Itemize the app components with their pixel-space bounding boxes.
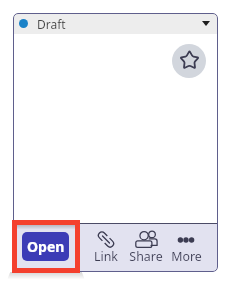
button[interactable]: Open — [22, 232, 69, 261]
staticText: Share — [129, 248, 163, 265]
button[interactable]: Share — [126, 229, 166, 267]
button[interactable]: More — [166, 229, 206, 267]
staticText: Open — [27, 237, 65, 256]
button[interactable]: Draft — [13, 13, 218, 34]
button[interactable]: Link — [86, 229, 126, 267]
button[interactable]: Expand draft menu — [195, 13, 216, 34]
staticText: Draft — [37, 16, 66, 32]
staticText: More — [171, 248, 202, 265]
button[interactable]: Favorite — [172, 44, 206, 78]
staticText: Link — [94, 248, 118, 265]
